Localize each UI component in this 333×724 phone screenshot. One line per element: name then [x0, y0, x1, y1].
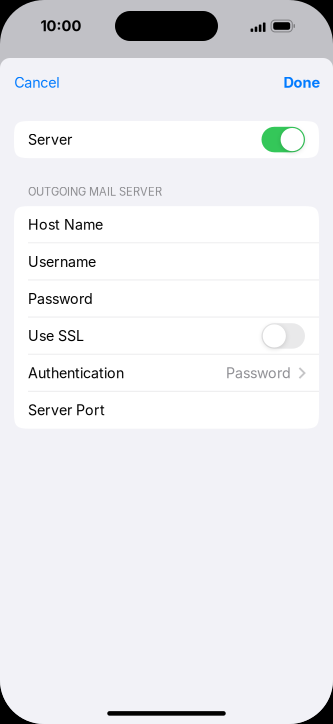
button[interactable]: Server Port — [14, 392, 319, 429]
staticText: Cancel — [14, 74, 59, 91]
button[interactable]: Done — [273, 58, 333, 102]
staticText: Server Port — [28, 402, 105, 419]
staticText: Authentication — [28, 364, 124, 382]
button[interactable]: Password — [14, 280, 319, 317]
button[interactable]: Server — [261, 127, 305, 152]
staticText: Username — [28, 253, 96, 270]
staticText: Use SSL — [28, 327, 84, 345]
button[interactable]: Authentication — [14, 354, 319, 392]
staticText: Password — [226, 364, 291, 382]
staticText: 10:00 — [40, 17, 81, 35]
staticText: Password — [28, 290, 93, 307]
staticText: Host Name — [28, 216, 103, 233]
button[interactable]: Username — [14, 243, 319, 280]
button[interactable]: Cancel — [0, 58, 69, 102]
staticText: Server — [28, 131, 72, 148]
staticText: OUTGOING MAIL SERVER — [28, 185, 162, 198]
button[interactable]: Use SSL — [261, 323, 305, 349]
button[interactable]: Host Name — [14, 206, 319, 243]
staticText: Done — [283, 74, 320, 91]
